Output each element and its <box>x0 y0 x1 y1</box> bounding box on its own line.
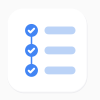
button[interactable]: Task list <box>0 0 100 100</box>
